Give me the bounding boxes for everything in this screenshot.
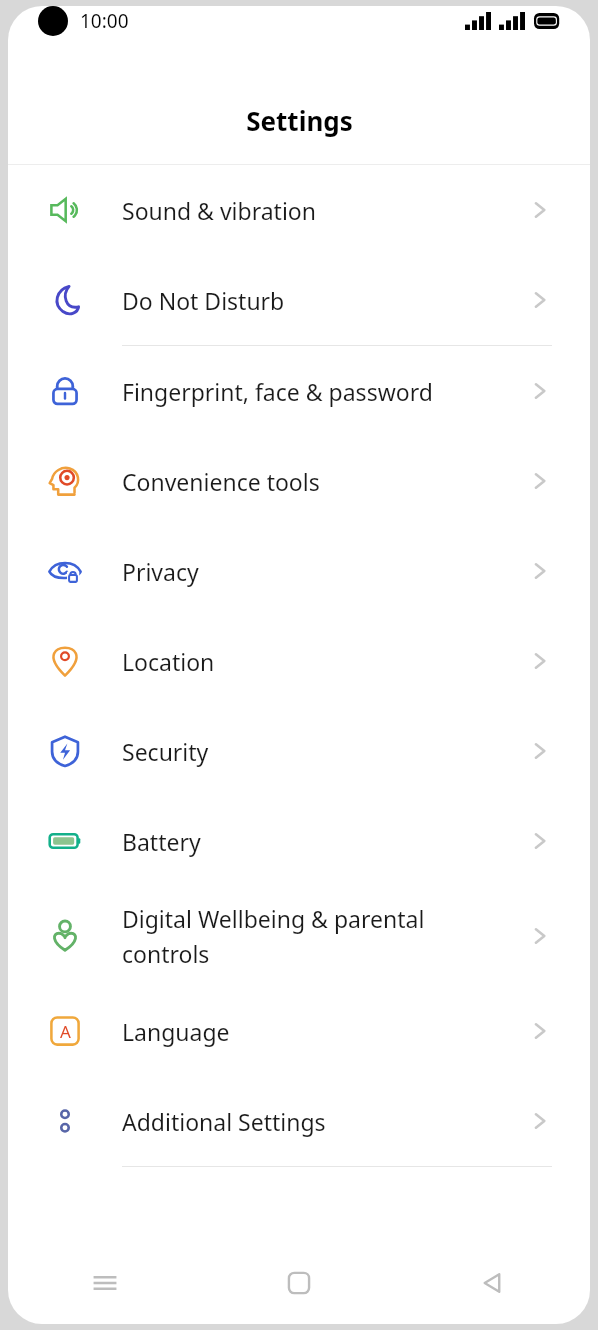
button[interactable]: Recents bbox=[8, 1242, 202, 1324]
staticText: Security bbox=[122, 736, 528, 767]
button[interactable]: Sound & vibration bbox=[8, 165, 590, 255]
button[interactable]: Digital Wellbeing & parental controls bbox=[8, 886, 590, 986]
button[interactable]: A bbox=[8, 986, 590, 1076]
staticText: Digital Wellbeing & parental controls bbox=[122, 903, 528, 970]
staticText: Language bbox=[122, 1016, 528, 1047]
button[interactable]: Additional Settings bbox=[8, 1076, 590, 1166]
staticText: Do Not Disturb bbox=[122, 285, 528, 316]
button[interactable]: Convenience tools bbox=[8, 436, 590, 526]
button[interactable]: Do Not Disturb bbox=[8, 255, 590, 345]
staticText: Location bbox=[122, 646, 528, 677]
button[interactable]: Privacy bbox=[8, 526, 590, 616]
button[interactable]: Home bbox=[202, 1242, 396, 1324]
staticText: Settings bbox=[246, 103, 353, 138]
staticText: A bbox=[60, 1020, 71, 1043]
button[interactable]: Fingerprint, face & password bbox=[8, 346, 590, 436]
button[interactable]: Back bbox=[396, 1242, 590, 1324]
staticText: 10:00 bbox=[80, 8, 129, 34]
staticText: Convenience tools bbox=[122, 466, 528, 497]
staticText: Fingerprint, face & password bbox=[122, 376, 528, 407]
button[interactable]: Battery bbox=[8, 796, 590, 886]
staticText: Privacy bbox=[122, 556, 528, 587]
staticText: Sound & vibration bbox=[122, 195, 528, 226]
button[interactable]: Location bbox=[8, 616, 590, 706]
button[interactable]: Security bbox=[8, 706, 590, 796]
staticText: Additional Settings bbox=[122, 1106, 528, 1137]
staticText: Battery bbox=[122, 826, 528, 857]
